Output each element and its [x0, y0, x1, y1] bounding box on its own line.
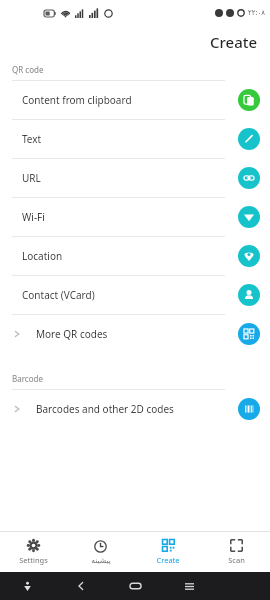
staticText: Text — [22, 132, 42, 146]
staticText: Create — [210, 32, 258, 52]
button[interactable]: Contact (VCard) — [0, 275, 270, 314]
button[interactable]: Download — [0, 572, 54, 600]
button[interactable]: Recents — [162, 572, 216, 600]
staticText: URL — [22, 171, 41, 185]
button[interactable]: Home — [108, 572, 162, 600]
staticText: Barcodes and other 2D codes — [36, 402, 174, 416]
button[interactable]: Contact (VCard) — [238, 284, 260, 306]
staticText: پیشینه — [91, 556, 111, 565]
staticText: Location — [22, 249, 63, 263]
staticText: Scan — [228, 555, 245, 565]
staticText: Contact (VCard) — [22, 288, 95, 302]
button[interactable]: Location — [238, 245, 260, 267]
button[interactable]: URL — [0, 158, 270, 197]
button[interactable]: Content from clipboard — [0, 80, 270, 119]
button[interactable]: More QR codes — [0, 314, 270, 353]
button[interactable]: Settings — [0, 532, 67, 572]
button[interactable]: Barcodes and other 2D codes — [238, 398, 260, 420]
button[interactable]: Wi-Fi — [238, 206, 260, 228]
staticText: More QR codes — [36, 327, 108, 341]
staticText: ۲۲:۰۸ — [248, 8, 265, 18]
button[interactable]: URL — [238, 167, 260, 189]
button[interactable]: Back — [54, 572, 108, 600]
button[interactable]: Scan — [202, 532, 270, 572]
staticText: Barcode — [12, 373, 43, 384]
button[interactable]: پیشینه — [67, 532, 134, 572]
staticText: Content from clipboard — [22, 93, 132, 107]
button[interactable]: Text — [0, 119, 270, 158]
button[interactable]: Text — [238, 128, 260, 150]
button[interactable]: Create — [134, 532, 202, 572]
button[interactable]: Location — [0, 236, 270, 275]
button[interactable]: Content from clipboard — [238, 89, 260, 111]
button[interactable]: Wi-Fi — [0, 197, 270, 236]
staticText: Wi-Fi — [22, 210, 45, 224]
button[interactable]: More QR codes — [238, 323, 260, 345]
staticText: Settings — [19, 555, 48, 565]
staticText: QR code — [12, 64, 44, 75]
button[interactable]: Barcodes and other 2D codes — [0, 389, 270, 428]
staticText: Create — [156, 555, 180, 565]
